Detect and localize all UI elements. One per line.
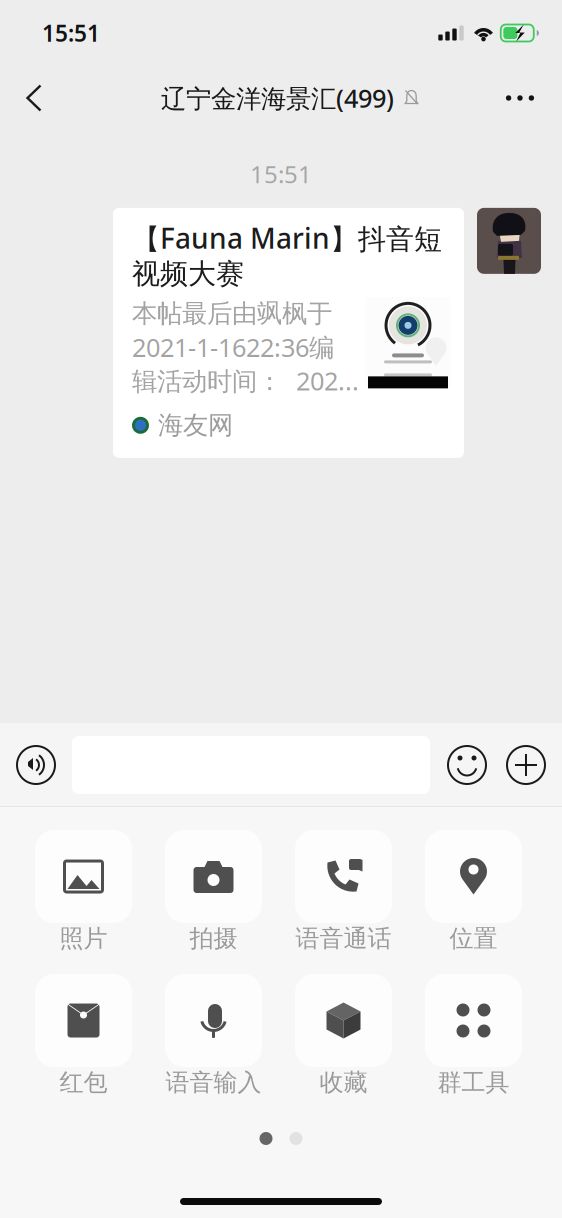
button[interactable]: Emoji (448, 746, 486, 784)
staticText: 15:51 (250, 158, 312, 190)
staticText: 15:51 (42, 18, 100, 48)
button[interactable]: More options (495, 71, 545, 125)
staticText: 语音输入 (165, 1068, 261, 1097)
staticText: 辽宁金洋海景汇(499) (161, 81, 394, 115)
button[interactable]: 照片 (35, 830, 132, 954)
button[interactable]: 【Fauna Marin】抖音短 (113, 208, 464, 458)
button[interactable]: Back (13, 71, 55, 125)
staticText: 位置 (449, 924, 497, 953)
staticText: 海友网 (158, 410, 233, 441)
button[interactable]: Sender avatar (477, 208, 541, 274)
staticText: 语音通话 (295, 924, 391, 953)
button[interactable]: 收藏 (295, 974, 392, 1098)
staticText: 红包 (59, 1068, 107, 1097)
button[interactable]: 位置 (425, 830, 522, 954)
button[interactable]: More options (507, 746, 545, 784)
button[interactable]: Voice input (17, 746, 55, 784)
staticText: 本帖最后由飒枫于 (132, 298, 332, 329)
staticText: 收藏 (319, 1068, 367, 1097)
button[interactable]: 语音输入 (165, 974, 262, 1098)
button[interactable]: 语音通话 (295, 830, 392, 954)
staticText: 视频大赛 (132, 257, 244, 291)
button[interactable]: 红包 (35, 974, 132, 1098)
staticText: 群工具 (437, 1068, 509, 1097)
staticText: 【Fauna Marin】抖音短 (132, 219, 442, 256)
staticText: 辑活动时间： 202... (132, 364, 359, 397)
button[interactable]: 拍摄 (165, 830, 262, 954)
staticText: 照片 (59, 924, 107, 953)
staticText: 拍摄 (189, 924, 237, 953)
button[interactable]: 群工具 (425, 974, 522, 1098)
staticText: 2021-1-1622:36编 (132, 330, 334, 364)
